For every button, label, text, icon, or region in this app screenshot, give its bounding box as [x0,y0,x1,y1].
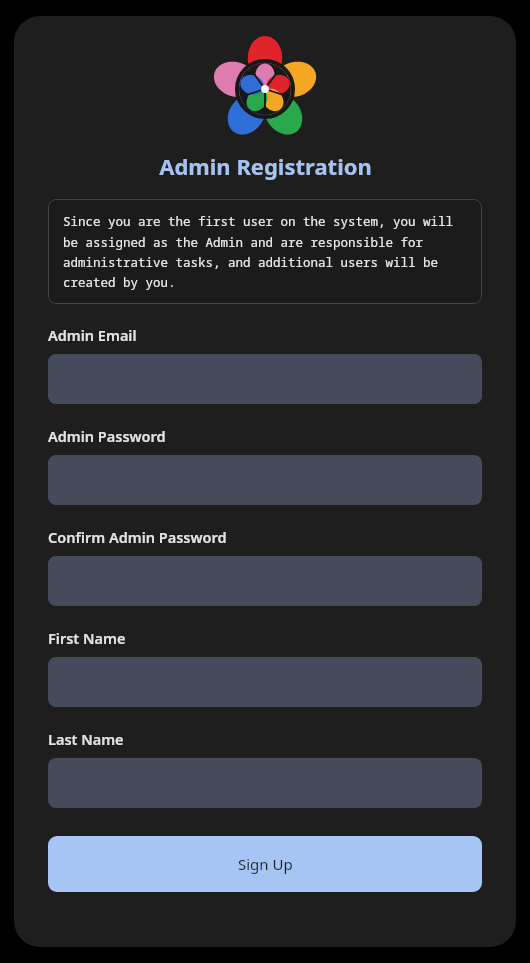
staticText: Admin Password [48,426,166,446]
button[interactable]: Sign Up [48,836,482,892]
staticText: Last Name [48,729,124,749]
staticText: Admin Registration [159,151,372,181]
staticText: Admin Email [48,325,137,345]
staticText: Since you are the first user on the syst… [63,213,467,290]
staticText: Sign Up [238,854,293,874]
staticText: Confirm Admin Password [48,527,227,547]
other: App logo [213,37,317,141]
staticText: First Name [48,628,126,648]
